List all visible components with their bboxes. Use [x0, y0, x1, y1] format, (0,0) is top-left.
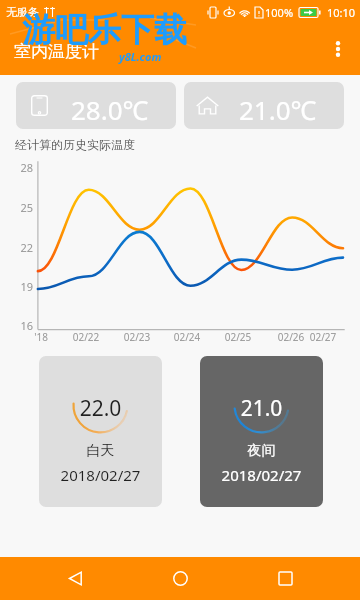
- staticText: 02/27: [303, 330, 343, 344]
- staticText: 25: [14, 200, 33, 215]
- staticText: 夜间: [200, 442, 323, 460]
- button[interactable]: Back: [45, 557, 105, 600]
- staticText: 02/25: [218, 330, 258, 344]
- staticText: 28.0℃: [71, 92, 149, 127]
- staticText: 游吧乐下载: [22, 9, 187, 51]
- staticText: 02/24: [167, 330, 207, 344]
- button[interactable]: 22.0: [39, 356, 162, 507]
- button[interactable]: Home: [150, 557, 210, 600]
- staticText: 21.0℃: [239, 92, 317, 127]
- staticText: 02/22: [66, 330, 106, 344]
- staticText: 19: [14, 279, 33, 294]
- staticText: y8L.com: [119, 49, 162, 64]
- staticText: 02/23: [117, 330, 157, 344]
- button[interactable]: More options: [322, 27, 354, 71]
- button[interactable]: Recent apps: [255, 557, 315, 600]
- staticText: 16: [14, 318, 33, 333]
- staticText: 100%: [265, 5, 294, 20]
- staticText: 2018/02/27: [39, 465, 162, 485]
- staticText: 10:10: [327, 5, 356, 20]
- button[interactable]: 28.0℃: [16, 82, 176, 129]
- staticText: 02/26: [271, 330, 311, 344]
- staticText: 室内温度计: [14, 41, 99, 62]
- staticText: 无服务: [6, 5, 39, 19]
- button[interactable]: 21.0℃: [184, 82, 344, 129]
- button[interactable]: 21.0: [200, 356, 323, 507]
- staticText: 2018/02/27: [200, 465, 323, 485]
- staticText: 21.0: [200, 394, 323, 423]
- staticText: '18: [21, 330, 61, 344]
- staticText: 22.0: [39, 394, 162, 423]
- staticText: 经计算的历史实际温度: [15, 137, 135, 152]
- staticText: 28: [14, 160, 33, 175]
- staticText: 22: [14, 240, 33, 255]
- staticText: 白天: [39, 442, 162, 460]
